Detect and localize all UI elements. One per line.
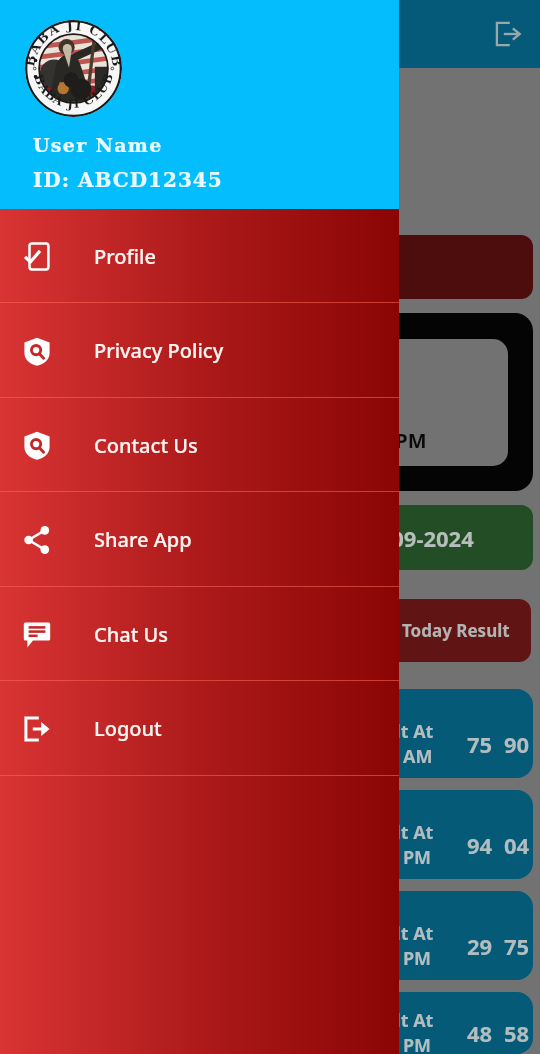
- staticText: 08:00 PM: [352, 1033, 432, 1054]
- staticText: Result At 05:00 PM: [243, 427, 427, 454]
- button[interactable]: Result At: [7, 992, 533, 1054]
- button[interactable]: Chat Us: [0, 587, 399, 681]
- button[interactable]: Today Result: [9, 599, 531, 662]
- staticText: 29: [467, 931, 493, 961]
- staticText: Result At: [352, 1008, 434, 1033]
- staticText: 48: [467, 1018, 493, 1048]
- staticText: Result At: [352, 719, 434, 744]
- staticText: 58: [504, 1018, 530, 1048]
- button[interactable]: Result At: [7, 689, 533, 778]
- staticText: 11:00 AM: [352, 744, 433, 769]
- button[interactable]: Profile: [0, 209, 399, 303]
- staticText: 75: [504, 931, 530, 961]
- staticText: Profile: [94, 243, 156, 270]
- staticText: Result At: [352, 921, 434, 946]
- button[interactable]: Result At: [7, 790, 533, 879]
- staticText: Today Result: [402, 619, 510, 642]
- button[interactable]: Result At: [7, 891, 533, 980]
- button[interactable]: 19-09-2024: [7, 505, 533, 570]
- staticText: 04: [504, 830, 530, 860]
- staticText: 90: [504, 729, 530, 759]
- staticText: User Name: [33, 134, 163, 156]
- button[interactable]: Logout: [486, 12, 530, 56]
- staticText: Share App: [94, 526, 192, 553]
- staticText: Result At: [352, 820, 434, 845]
- staticText: 75: [467, 729, 493, 759]
- staticText: 02:00 PM: [352, 845, 432, 870]
- staticText: Chat Us: [94, 621, 169, 648]
- staticText: 94: [467, 830, 493, 860]
- staticText: ID: ABCD12345: [33, 168, 223, 191]
- button[interactable]: Privacy Policy: [0, 303, 399, 398]
- button[interactable]: [7, 235, 533, 299]
- button[interactable]: Logout: [0, 681, 399, 776]
- staticText: Privacy Policy: [94, 337, 224, 364]
- staticText: 19-09-2024: [359, 523, 474, 553]
- staticText: 05:00 PM: [352, 946, 432, 971]
- staticText: Contact Us: [94, 432, 198, 459]
- button[interactable]: Contact Us: [0, 398, 399, 492]
- staticText: Logout: [94, 715, 162, 742]
- button[interactable]: Share App: [0, 492, 399, 587]
